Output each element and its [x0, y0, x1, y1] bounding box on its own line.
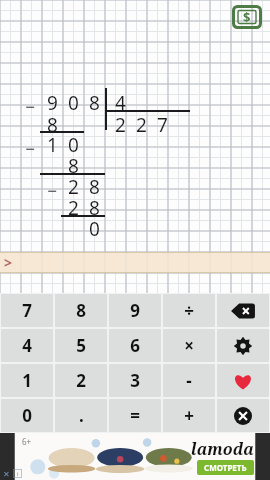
staticText: 7: [22, 299, 32, 322]
button[interactable]: Favorites: [217, 364, 269, 397]
staticText: >: [4, 253, 13, 272]
button[interactable]: .: [55, 399, 107, 432]
staticText: i: [17, 470, 19, 478]
button[interactable]: ×: [163, 329, 215, 362]
button[interactable]: 8: [55, 294, 107, 327]
staticText: 8: [89, 90, 100, 114]
staticText: ×: [184, 334, 194, 357]
button[interactable]: 1: [1, 364, 53, 397]
staticText: 9: [47, 90, 58, 114]
staticText: 3: [130, 369, 140, 392]
staticText: −: [25, 95, 35, 118]
staticText: 5: [76, 334, 86, 357]
staticText: 2: [68, 195, 79, 219]
staticText: 6+: [22, 436, 32, 447]
staticText: -: [186, 369, 192, 392]
staticText: .: [79, 404, 84, 427]
staticText: 4: [22, 334, 32, 357]
button[interactable]: Backspace: [217, 294, 269, 327]
staticText: $: [243, 8, 251, 26]
staticText: 8: [68, 153, 79, 177]
button[interactable]: Purchase: [232, 5, 262, 29]
button[interactable]: 5: [55, 329, 107, 362]
staticText: 1: [47, 132, 58, 156]
button[interactable]: >: [0, 252, 270, 273]
staticText: 0: [68, 90, 79, 114]
staticText: 2: [115, 112, 126, 136]
button[interactable]: 9: [109, 294, 161, 327]
staticText: +: [184, 404, 194, 427]
staticText: ✕: [3, 470, 10, 479]
staticText: 8: [76, 299, 86, 322]
button[interactable]: СМОТРЕТЬ: [204, 462, 247, 473]
staticText: 8: [89, 174, 100, 198]
staticText: 0: [89, 216, 100, 240]
staticText: СМОТРЕТЬ: [204, 462, 247, 473]
staticText: 2: [136, 112, 147, 136]
button[interactable]: Settings: [217, 329, 269, 362]
staticText: 9: [130, 299, 140, 322]
button[interactable]: 2: [55, 364, 107, 397]
button[interactable]: 4: [1, 329, 53, 362]
staticText: 4: [115, 90, 126, 114]
button[interactable]: Advertisement: [0, 433, 270, 480]
staticText: 7: [157, 112, 168, 136]
staticText: 8: [89, 195, 100, 219]
staticText: =: [130, 404, 140, 427]
button[interactable]: 7: [1, 294, 53, 327]
staticText: 1: [22, 369, 32, 392]
staticText: −: [25, 137, 35, 160]
button[interactable]: 3: [109, 364, 161, 397]
button[interactable]: +: [163, 399, 215, 432]
button[interactable]: ÷: [163, 294, 215, 327]
button[interactable]: -: [163, 364, 215, 397]
button[interactable]: 0: [1, 399, 53, 432]
staticText: 8: [47, 112, 58, 136]
staticText: 0: [22, 404, 32, 427]
button[interactable]: 6: [109, 329, 161, 362]
staticText: 2: [68, 174, 79, 198]
staticText: 0: [68, 132, 79, 156]
button[interactable]: Clear: [217, 399, 269, 432]
button[interactable]: =: [109, 399, 161, 432]
staticText: −: [47, 179, 57, 202]
staticText: ÷: [184, 299, 194, 322]
staticText: lamoda: [191, 438, 254, 460]
staticText: 6: [130, 334, 140, 357]
staticText: 2: [76, 369, 86, 392]
